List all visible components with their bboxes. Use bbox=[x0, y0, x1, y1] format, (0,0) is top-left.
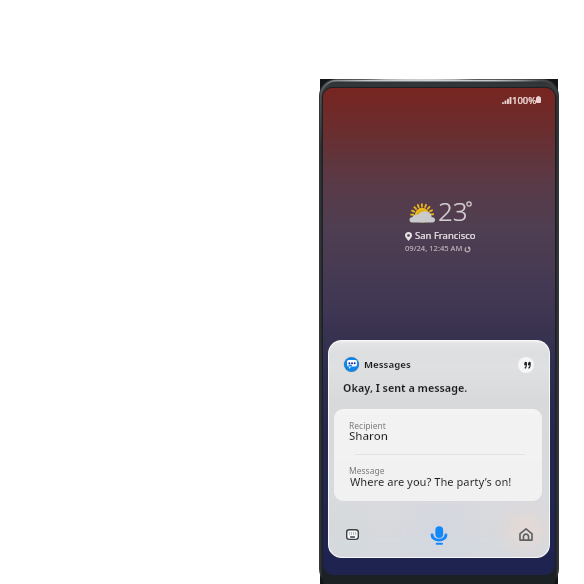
staticText: San Francisco bbox=[415, 229, 476, 242]
staticText: Message bbox=[349, 465, 385, 477]
button[interactable]: Messages bbox=[343, 356, 412, 373]
staticText: 09/24, 12:45 AM bbox=[405, 243, 463, 253]
staticText: Okay, I sent a message. bbox=[343, 381, 468, 395]
staticText: Recipient bbox=[349, 420, 386, 432]
button[interactable]: Home bbox=[509, 518, 542, 551]
button[interactable] bbox=[334, 409, 542, 501]
button[interactable]: Keyboard bbox=[336, 518, 369, 551]
staticText: Sharon bbox=[349, 428, 388, 444]
button[interactable]: Show transcript bbox=[518, 357, 534, 373]
staticText: Messages bbox=[364, 358, 411, 371]
staticText: Where are you? The party’s on! bbox=[350, 474, 512, 489]
button[interactable]: Microphone bbox=[422, 518, 456, 552]
staticText: 100% bbox=[512, 94, 537, 107]
staticText: 23 bbox=[438, 193, 468, 228]
